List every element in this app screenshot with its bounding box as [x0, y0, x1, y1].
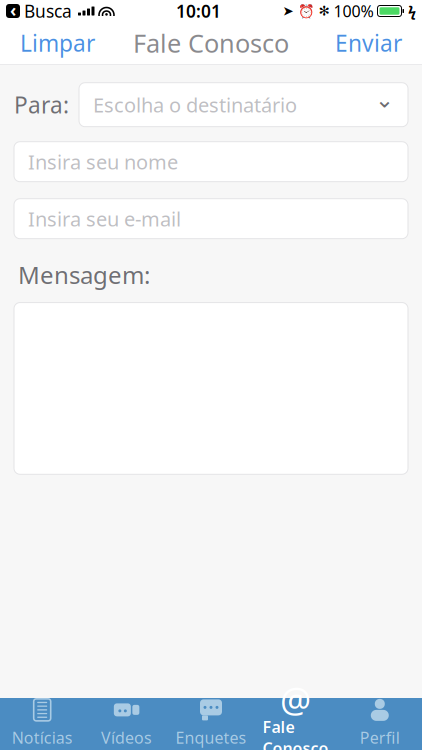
button[interactable]: [0, 291, 422, 494]
button[interactable]: Enquetes: [169, 698, 253, 750]
staticText: Escolha o destinatário: [93, 91, 297, 118]
staticText: Perfil: [360, 727, 400, 748]
staticText: Enquetes: [175, 727, 246, 748]
staticText: Limpar: [20, 28, 95, 58]
staticText: ‹: [10, 0, 16, 21]
button[interactable]: @: [253, 698, 338, 750]
staticText: Para:: [14, 90, 69, 120]
staticText: 10:01: [176, 0, 221, 22]
button[interactable]: Enviar: [329, 20, 408, 66]
staticText: Notícias: [12, 727, 73, 748]
staticText: Busca: [24, 0, 72, 22]
button[interactable]: Perfil: [338, 698, 422, 750]
staticText: ϟ: [408, 1, 416, 21]
staticText: Mensagem:: [18, 259, 150, 291]
staticText: ⌄: [375, 87, 394, 112]
button[interactable]: Vídeos: [84, 698, 169, 750]
button[interactable]: Escolha o destinatário: [79, 83, 408, 127]
button[interactable]: Notícias: [0, 698, 84, 750]
button[interactable]: Insira seu e-mail: [0, 182, 422, 239]
button[interactable]: Insira seu nome: [0, 127, 422, 182]
staticText: 100%: [333, 0, 373, 22]
staticText: @: [280, 676, 311, 722]
staticText: Enviar: [335, 28, 402, 58]
button[interactable]: Limpar: [14, 20, 101, 66]
staticText: Fale Conosco: [133, 26, 289, 60]
staticText: Insira seu e-mail: [28, 205, 181, 232]
staticText: Insira seu nome: [28, 148, 178, 175]
staticText: Fale Conosco: [262, 716, 328, 750]
staticText: ✻: [318, 3, 329, 18]
staticText: ⏰: [297, 3, 314, 19]
staticText: ➤: [282, 3, 293, 18]
staticText: Vídeos: [101, 727, 152, 748]
